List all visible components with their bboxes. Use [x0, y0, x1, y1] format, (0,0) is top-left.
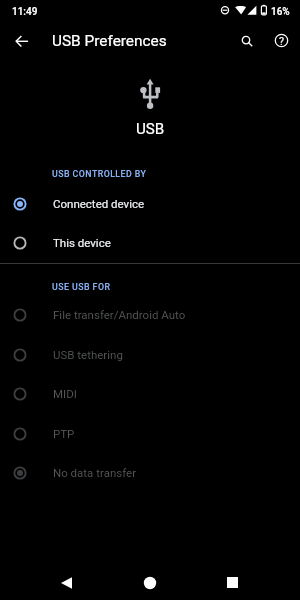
- staticText: ?: [279, 35, 284, 47]
- staticText: 16%: [271, 6, 290, 18]
- staticText: MIDI: [53, 387, 77, 400]
- button[interactable]: PTP: [0, 414, 300, 453]
- button[interactable]: Recents: [215, 565, 250, 600]
- button[interactable]: File transfer/Android Auto: [0, 295, 300, 334]
- staticText: USB tethering: [53, 348, 123, 361]
- staticText: PTP: [53, 427, 75, 440]
- button[interactable]: USB tethering: [0, 335, 300, 374]
- staticText: 11:49: [12, 6, 38, 18]
- staticText: Connected device: [53, 197, 145, 210]
- staticText: USB: [136, 120, 165, 138]
- staticText: File transfer/Android Auto: [53, 308, 186, 321]
- staticText: This device: [53, 236, 111, 249]
- button[interactable]: This device: [0, 223, 300, 262]
- staticText: No data transfer: [53, 466, 137, 479]
- staticText: USB Preferences: [52, 32, 167, 50]
- button[interactable]: Search: [232, 26, 261, 55]
- button[interactable]: Connected device: [0, 184, 300, 223]
- button[interactable]: Home: [132, 565, 167, 600]
- button[interactable]: Help: [267, 26, 296, 55]
- button[interactable]: Back: [49, 565, 84, 600]
- staticText: USB CONTROLLED BY: [52, 169, 147, 179]
- button[interactable]: No data transfer: [0, 453, 300, 492]
- button[interactable]: MIDI: [0, 374, 300, 413]
- button[interactable]: Back: [7, 26, 37, 56]
- staticText: USE USB FOR: [52, 282, 111, 292]
